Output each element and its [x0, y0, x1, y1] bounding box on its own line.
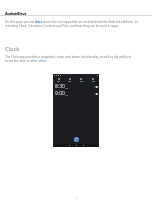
- button[interactable]: [87, 77, 99, 83]
- staticText: 1: [76, 196, 78, 200]
- button[interactable]: Toggle alarm: [94, 86, 98, 88]
- staticText: 9:00: [55, 90, 65, 97]
- button[interactable]: [75, 77, 87, 83]
- staticText: AM: [65, 87, 69, 90]
- button[interactable]: [53, 77, 64, 83]
- button[interactable]: [64, 77, 75, 83]
- button[interactable]: 9:00: [53, 90, 99, 97]
- staticText: AndroidDevs: [5, 11, 27, 16]
- staticText: On this page you see docs about the core…: [5, 20, 138, 24]
- button[interactable]: Toggle alarm: [94, 93, 98, 95]
- staticText: including Clock, Calculator, Contacts an…: [5, 24, 119, 28]
- button[interactable]: 8:30: [53, 83, 99, 90]
- button[interactable]: Add alarm: [74, 137, 79, 142]
- staticText: AM: [65, 94, 69, 97]
- staticText: 8:30: [55, 83, 65, 90]
- staticText: Clock: [5, 45, 20, 53]
- staticText: The Clock app provides a stopwatch, time…: [5, 55, 132, 59]
- button[interactable]: AndroidDevs: [5, 11, 27, 16]
- staticText: to see the time in other cities: [5, 59, 46, 63]
